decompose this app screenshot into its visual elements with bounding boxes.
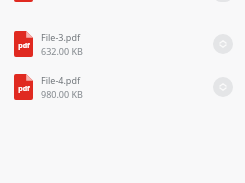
staticText: File-3.pdf xyxy=(41,31,81,43)
button[interactable]: pdf xyxy=(0,0,245,16)
staticText: 980.00 KB xyxy=(41,88,83,100)
button[interactable]: Reorder file xyxy=(213,0,233,2)
staticText: 632.00 KB xyxy=(41,45,83,57)
button[interactable]: pdf xyxy=(0,29,245,59)
button[interactable]: Reorder file xyxy=(213,77,233,97)
staticText: pdf xyxy=(18,41,30,51)
staticText: pdf xyxy=(18,84,30,94)
staticText: File-4.pdf xyxy=(41,74,81,86)
button[interactable]: Reorder file xyxy=(213,34,233,54)
button[interactable]: pdf xyxy=(0,72,245,102)
